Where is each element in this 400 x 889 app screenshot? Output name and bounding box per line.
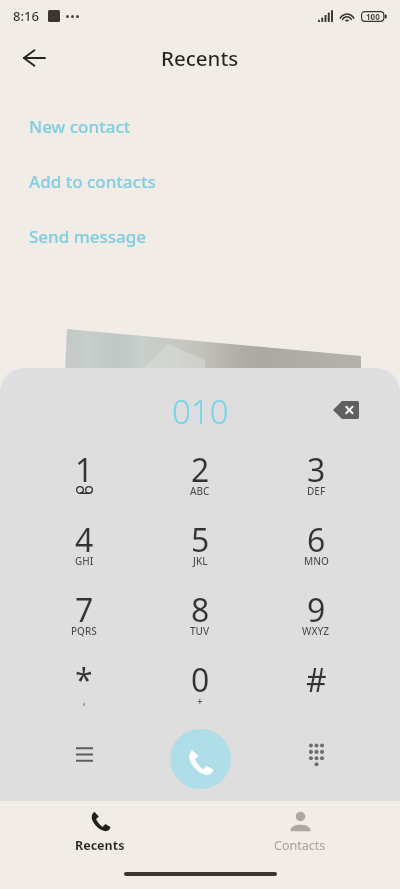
button[interactable]: Recents (0, 811, 200, 854)
staticText: 0 (191, 658, 210, 702)
staticText: # (306, 658, 327, 702)
staticText: TUV (190, 624, 210, 638)
staticText: PQRS (71, 624, 97, 638)
button[interactable]: Add to contacts (0, 154, 400, 209)
staticText: DEF (307, 484, 326, 498)
button[interactable]: Menu (60, 735, 108, 783)
button[interactable]: Call (170, 729, 231, 789)
staticText: Recents (75, 837, 125, 854)
button[interactable]: 2 (142, 449, 258, 519)
staticText: MNO (304, 554, 329, 568)
staticText: Contacts (274, 837, 326, 854)
staticText: Send message (29, 225, 147, 248)
button[interactable]: * (26, 659, 142, 729)
staticText: 100 (366, 11, 380, 22)
staticText: 2 (191, 448, 210, 492)
staticText: JKL (193, 554, 208, 568)
button[interactable]: Send message (0, 209, 400, 264)
staticText: , (83, 694, 86, 708)
button[interactable]: 1 (26, 449, 142, 519)
staticText: 9 (307, 588, 326, 632)
button[interactable]: Back (12, 36, 56, 80)
button[interactable]: 6 (258, 519, 374, 589)
button[interactable]: New contact (0, 99, 400, 154)
button[interactable]: 5 (142, 519, 258, 589)
button[interactable]: Contacts (200, 811, 400, 854)
button[interactable]: 0 (142, 659, 258, 729)
staticText: ABC (190, 484, 210, 498)
button[interactable]: 3 (258, 449, 374, 519)
button[interactable]: 8 (142, 589, 258, 659)
button[interactable]: # (258, 659, 374, 729)
button[interactable]: Backspace (326, 390, 366, 430)
button[interactable]: 7 (26, 589, 142, 659)
staticText: 6 (307, 518, 326, 562)
staticText: + (197, 694, 203, 708)
button[interactable]: 4 (26, 519, 142, 589)
staticText: 1 (75, 448, 94, 492)
staticText: WXYZ (302, 624, 330, 638)
staticText: Add to contacts (29, 170, 156, 193)
staticText: 3 (307, 448, 326, 492)
staticText: 010 (172, 389, 229, 434)
staticText: 8:16 (13, 7, 39, 25)
button[interactable]: 9 (258, 589, 374, 659)
staticText: 4 (75, 518, 94, 562)
staticText: 7 (75, 588, 94, 632)
staticText: GHI (75, 554, 94, 568)
button[interactable]: Dialpad (292, 735, 340, 783)
staticText: 5 (191, 518, 210, 562)
staticText: New contact (29, 115, 131, 138)
staticText: 8 (191, 588, 210, 632)
staticText: Recents (161, 44, 239, 72)
staticText: * (75, 658, 93, 702)
